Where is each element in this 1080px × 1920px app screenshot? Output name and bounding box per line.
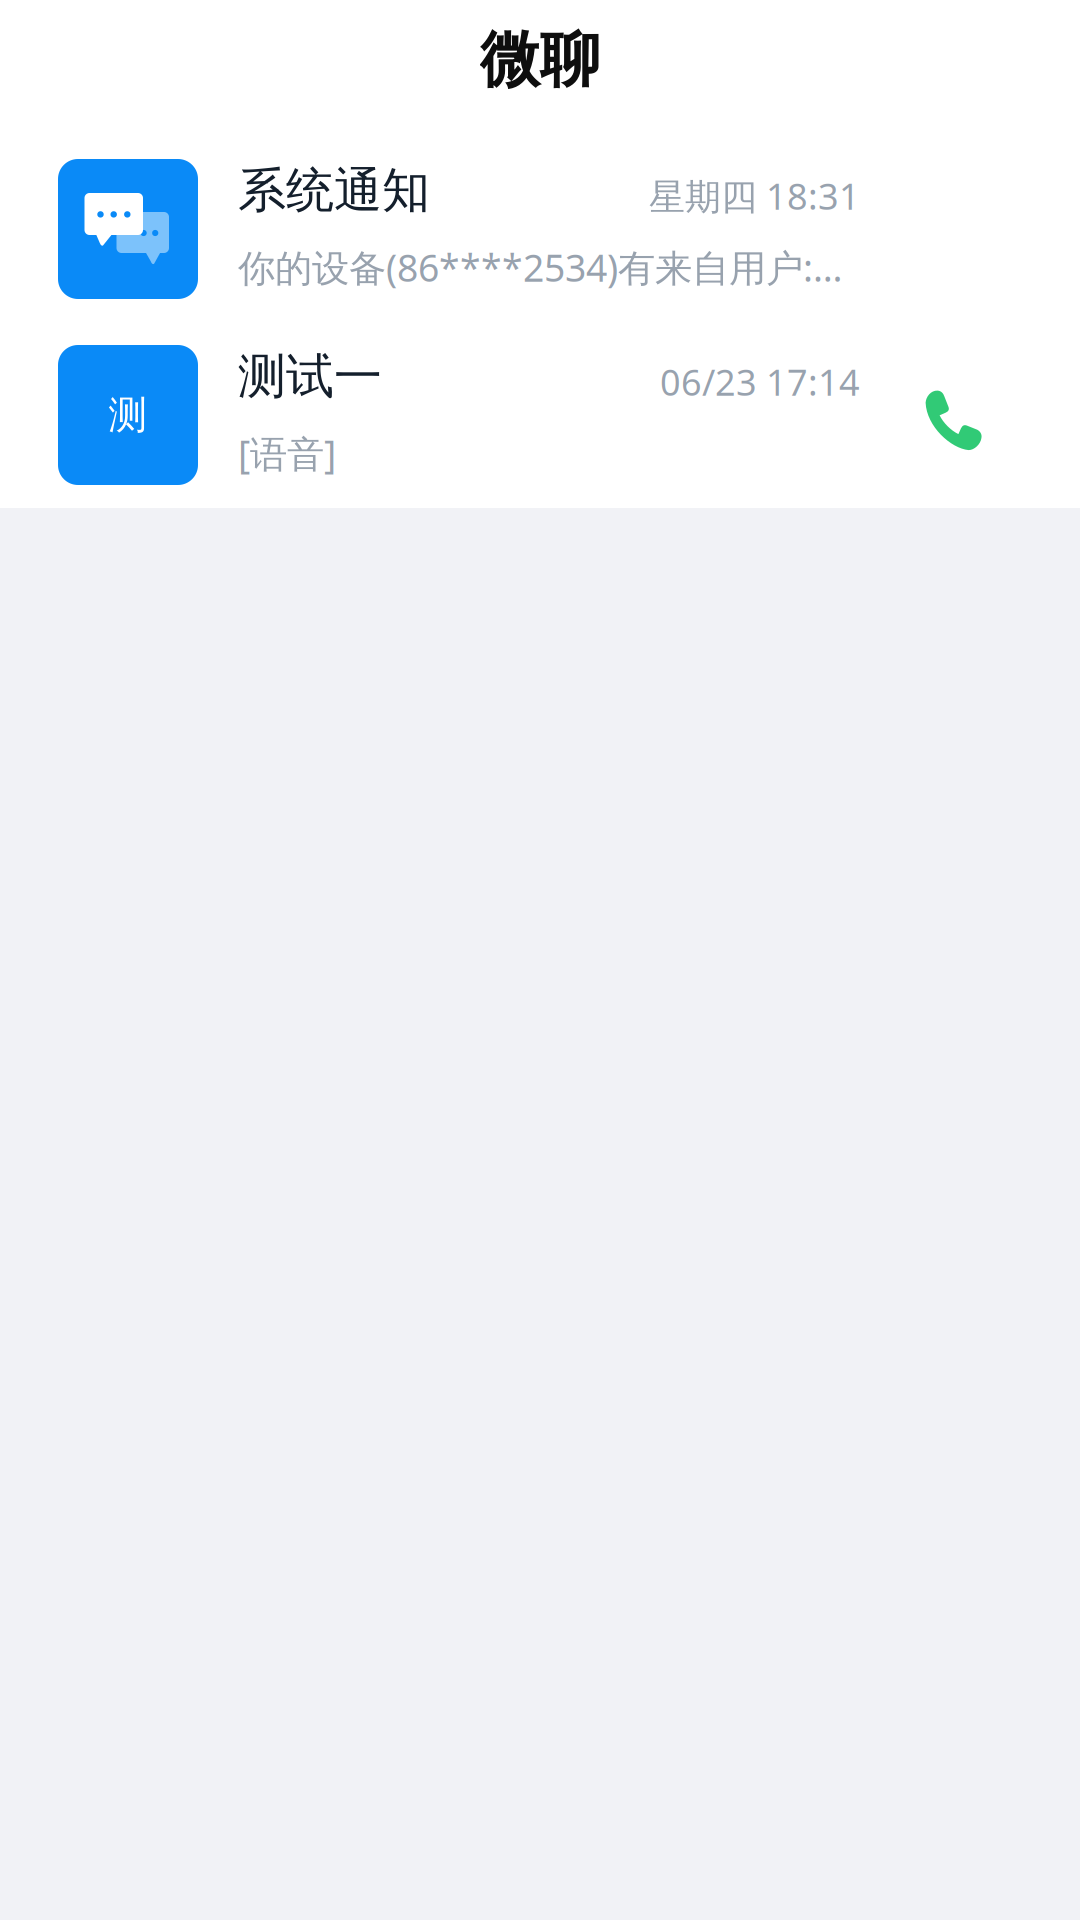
staticText: 你的设备(86****2534)有来自用户:… (238, 242, 843, 292)
staticText: [语音] (238, 428, 336, 478)
button[interactable]: 系统通知 (0, 120, 1080, 306)
button[interactable]: Call (893, 306, 1080, 481)
button[interactable]: 测 (0, 306, 1080, 508)
staticText: 测 (108, 391, 147, 439)
staticText: 系统通知 (238, 161, 430, 220)
staticText: 测试一 (238, 347, 382, 406)
staticText: 星期四 18:31 (649, 172, 860, 220)
staticText: 06/23 17:14 (660, 358, 860, 406)
staticText: 微聊 (480, 23, 600, 97)
